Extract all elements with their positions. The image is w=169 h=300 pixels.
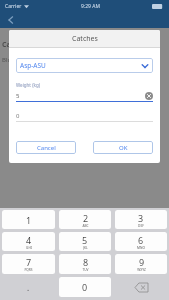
button[interactable]: 7 bbox=[2, 254, 55, 274]
staticText: Asp-ASU bbox=[20, 61, 46, 70]
staticText: Catches bbox=[72, 34, 98, 44]
button[interactable]: Asp-ASU bbox=[16, 58, 153, 73]
button[interactable]: Clear bbox=[145, 92, 153, 100]
button[interactable]: 4 bbox=[2, 232, 55, 251]
staticText: 7 bbox=[26, 256, 32, 268]
staticText: Ca bbox=[2, 40, 11, 50]
button[interactable]: 6 bbox=[115, 232, 167, 251]
staticText: Carrier bbox=[5, 3, 22, 10]
button[interactable]: 0 bbox=[59, 277, 111, 297]
staticText: 9 bbox=[139, 256, 145, 268]
button[interactable]: 3 bbox=[115, 210, 167, 229]
button[interactable]: 2 bbox=[59, 210, 111, 229]
staticText: 8 bbox=[83, 256, 89, 268]
staticText: TUV bbox=[82, 268, 89, 272]
staticText: MNO bbox=[137, 246, 145, 250]
staticText: Weight (kg) bbox=[16, 82, 41, 88]
staticText: 5 bbox=[16, 92, 20, 100]
button[interactable]: 9 bbox=[115, 254, 167, 274]
staticText: 3 bbox=[138, 212, 144, 224]
staticText: 1 bbox=[26, 214, 32, 226]
button[interactable]: 5 bbox=[59, 232, 111, 251]
staticText: Cancel bbox=[37, 144, 56, 152]
staticText: 5 bbox=[82, 234, 88, 246]
staticText: DEF bbox=[138, 224, 144, 228]
staticText: JKL bbox=[83, 246, 88, 250]
staticText: WXYZ bbox=[137, 268, 146, 272]
button[interactable]: 8 bbox=[59, 254, 111, 274]
button[interactable]: 1 bbox=[2, 210, 55, 229]
staticText: Blu bbox=[2, 56, 12, 64]
staticText: 4 bbox=[26, 234, 32, 246]
staticText: 6 bbox=[138, 234, 144, 246]
staticText: ABC bbox=[82, 224, 89, 228]
button[interactable]: Backspace bbox=[115, 277, 167, 297]
staticText: 2 bbox=[83, 212, 89, 224]
staticText: 0 bbox=[16, 112, 20, 120]
staticText: . bbox=[27, 282, 30, 293]
staticText: 9:29 AM bbox=[81, 3, 100, 10]
button[interactable]: Back bbox=[4, 13, 18, 27]
staticText: GHI bbox=[26, 246, 32, 250]
staticText: 0 bbox=[82, 281, 88, 293]
button[interactable]: OK bbox=[93, 141, 153, 154]
staticText: OK bbox=[119, 144, 128, 152]
button[interactable]: Cancel bbox=[16, 141, 76, 154]
staticText: PQRS bbox=[24, 268, 33, 272]
